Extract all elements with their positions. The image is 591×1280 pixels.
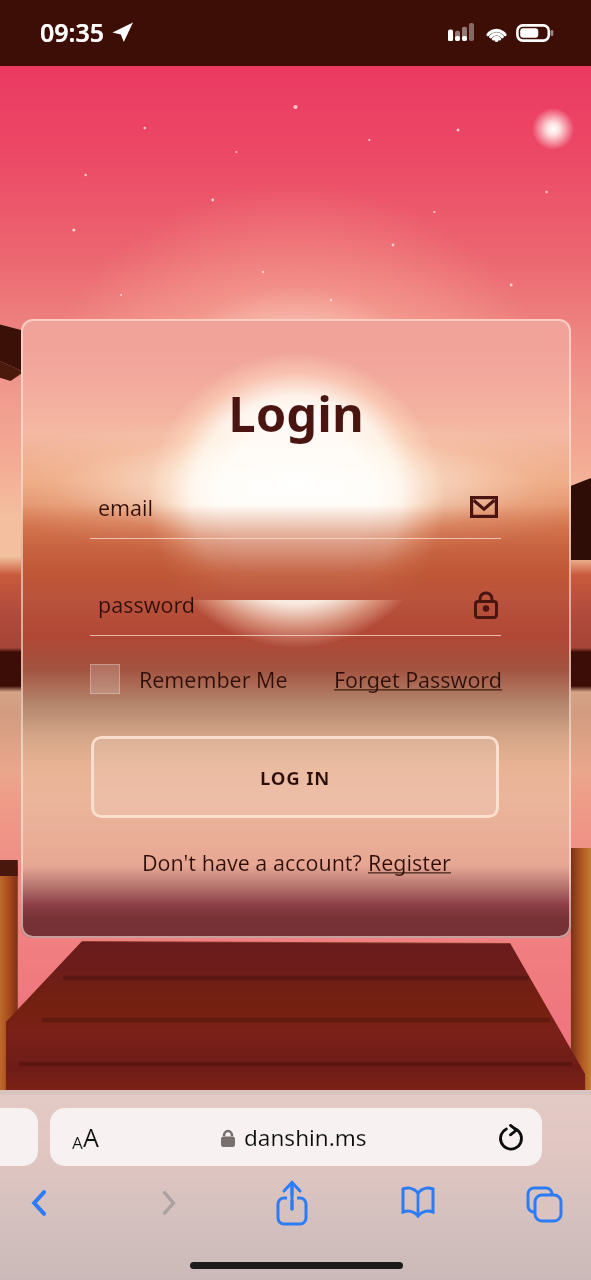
staticText: A — [72, 1131, 83, 1154]
staticText: 09:35 — [40, 15, 105, 49]
staticText: A — [83, 1120, 99, 1154]
button[interactable]: Bookmarks — [391, 1176, 445, 1230]
button[interactable]: email — [98, 490, 498, 524]
button[interactable]: Remember Me — [90, 664, 288, 694]
staticText: password — [98, 590, 195, 619]
button[interactable]: Reload — [491, 1108, 531, 1166]
staticText: Login — [21, 380, 571, 447]
button[interactable]: Tabs — [516, 1176, 570, 1230]
button[interactable]: LOG IN — [91, 736, 499, 818]
button[interactable]: Forward — [141, 1176, 195, 1230]
button[interactable]: Previous tab — [0, 1108, 38, 1166]
button[interactable]: Text size — [72, 1120, 99, 1154]
button[interactable]: Register — [368, 848, 451, 877]
staticText: email — [98, 493, 154, 522]
button[interactable]: password — [98, 587, 498, 621]
staticText: LOG IN — [260, 765, 331, 790]
button[interactable]: Text size — [50, 1108, 542, 1166]
staticText: danshin.ms — [244, 1122, 367, 1153]
button[interactable]: Forget Password — [334, 665, 502, 694]
button[interactable]: Back — [13, 1176, 67, 1230]
staticText: Don't have a account? — [142, 848, 368, 877]
staticText: Remember Me — [139, 665, 288, 694]
button[interactable]: Share — [265, 1176, 319, 1230]
